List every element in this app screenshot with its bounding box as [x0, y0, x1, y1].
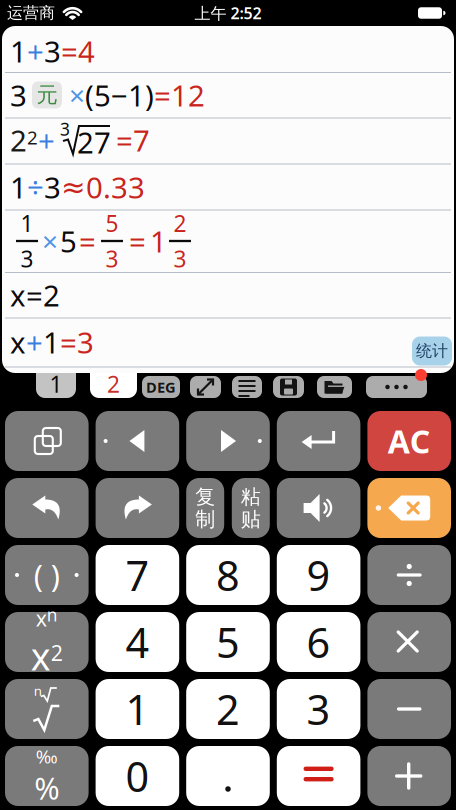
- staticText: 0.33: [86, 167, 145, 206]
- staticText: 4: [125, 615, 149, 669]
- staticText: 3: [105, 244, 118, 274]
- button[interactable]: 2: [186, 679, 270, 739]
- button[interactable]: 粘: [232, 478, 270, 538]
- button[interactable]: 全屏: [190, 376, 221, 398]
- staticText: 5: [105, 208, 118, 238]
- staticText: ×: [42, 222, 58, 260]
- staticText: =: [129, 221, 146, 260]
- staticText: 5: [216, 615, 240, 669]
- button[interactable]: n: [5, 679, 89, 739]
- staticText: n: [34, 682, 42, 699]
- button[interactable]: 小数点: [186, 746, 270, 806]
- button[interactable]: 撤销: [5, 478, 89, 538]
- button[interactable]: 更多: [366, 376, 427, 398]
- staticText: +: [27, 31, 44, 70]
- staticText: 3: [20, 244, 33, 274]
- button[interactable]: 等于: [277, 746, 360, 806]
- staticText: =: [61, 31, 78, 70]
- button[interactable]: DEG: [142, 376, 180, 398]
- button[interactable]: 4: [96, 612, 179, 672]
- staticText: ÷: [27, 167, 44, 206]
- button[interactable]: 3: [277, 679, 360, 739]
- button[interactable]: 0: [96, 746, 179, 806]
- button[interactable]: 减: [367, 679, 451, 739]
- staticText: ( ): [34, 555, 60, 595]
- staticText: 贴: [241, 507, 261, 532]
- button[interactable]: 右移: [186, 411, 270, 471]
- button[interactable]: 5: [186, 612, 270, 672]
- staticText: 6: [307, 615, 331, 669]
- staticText: 粘: [241, 484, 261, 509]
- staticText: ×: [69, 76, 85, 114]
- button[interactable]: 朗读: [277, 478, 360, 538]
- staticText: 7: [133, 120, 150, 159]
- staticText: 1: [150, 221, 167, 260]
- button[interactable]: 重做: [96, 478, 179, 538]
- staticText: 9: [307, 548, 331, 602]
- button[interactable]: ‰: [5, 746, 89, 806]
- staticText: 3: [10, 75, 27, 114]
- staticText: +: [26, 322, 43, 361]
- button[interactable]: 除: [367, 545, 451, 605]
- staticText: =: [154, 75, 171, 114]
- staticText: 制: [195, 507, 215, 532]
- staticText: 元: [36, 82, 57, 108]
- button[interactable]: 加: [367, 746, 451, 806]
- staticText: 1: [10, 31, 27, 70]
- button[interactable]: 9: [277, 545, 360, 605]
- button[interactable]: 7: [96, 545, 179, 605]
- staticText: 4: [78, 31, 95, 70]
- button[interactable]: AC: [367, 411, 451, 471]
- button[interactable]: 第 1 页: [36, 364, 76, 398]
- button[interactable]: 换行: [277, 411, 360, 471]
- staticText: 上午 2:52: [194, 2, 261, 24]
- button[interactable]: 复: [186, 478, 224, 538]
- staticText: x=2: [10, 275, 60, 314]
- staticText: 2: [107, 369, 120, 399]
- staticText: 27: [77, 122, 111, 161]
- button[interactable]: 第 2 页: [90, 364, 137, 398]
- staticText: (5−1): [85, 75, 154, 114]
- staticText: 1: [125, 682, 149, 736]
- button[interactable]: 保存: [273, 376, 304, 398]
- button[interactable]: ( ): [5, 545, 89, 605]
- staticText: 7: [125, 548, 149, 602]
- staticText: 22: [10, 120, 38, 159]
- staticText: ‰: [36, 744, 58, 768]
- staticText: +: [38, 120, 55, 159]
- staticText: 0: [125, 749, 149, 803]
- staticText: =: [60, 322, 77, 361]
- staticText: 8: [216, 548, 240, 602]
- staticText: %: [34, 767, 59, 808]
- button[interactable]: xn: [5, 612, 89, 672]
- button[interactable]: 页面: [5, 411, 89, 471]
- staticText: 3: [77, 322, 94, 361]
- staticText: 1: [20, 208, 33, 238]
- staticText: =: [79, 221, 96, 260]
- button[interactable]: 乘: [367, 612, 451, 672]
- staticText: 1: [43, 322, 60, 361]
- button[interactable]: 删除: [367, 478, 451, 538]
- staticText: 12: [171, 75, 205, 114]
- staticText: xn: [36, 603, 58, 632]
- staticText: 3: [60, 117, 70, 140]
- staticText: 3: [44, 167, 61, 206]
- staticText: 1: [49, 369, 62, 399]
- staticText: AC: [388, 420, 431, 462]
- staticText: 1: [10, 167, 27, 206]
- button[interactable]: 左移: [96, 411, 179, 471]
- staticText: 5: [60, 221, 77, 260]
- button[interactable]: 6: [277, 612, 360, 672]
- button[interactable]: 统计: [412, 336, 452, 365]
- button[interactable]: 8: [186, 545, 270, 605]
- button[interactable]: 1: [96, 679, 179, 739]
- staticText: 3: [173, 244, 186, 274]
- staticText: 复: [195, 484, 215, 509]
- staticText: x: [10, 322, 26, 361]
- button[interactable]: 文件: [317, 376, 352, 398]
- staticText: ≈: [61, 170, 86, 204]
- staticText: 3: [44, 31, 61, 70]
- staticText: DEG: [146, 377, 176, 397]
- button[interactable]: 历史记录: [232, 376, 262, 398]
- staticText: 2: [216, 682, 240, 736]
